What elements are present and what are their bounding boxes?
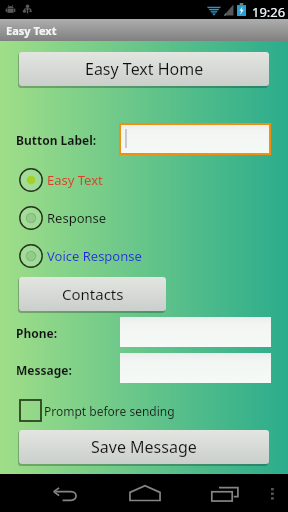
staticText: Contacts bbox=[62, 284, 124, 304]
staticText: Easy Text bbox=[6, 23, 57, 38]
button[interactable]: Easy Text Home bbox=[19, 52, 269, 87]
button[interactable]: Easy Text bbox=[0, 165, 288, 195]
staticText: Button Label: bbox=[16, 132, 97, 148]
button[interactable]: Back bbox=[44, 474, 84, 512]
button[interactable]: Response bbox=[0, 203, 288, 233]
staticText: 19:26 bbox=[252, 3, 286, 21]
button[interactable]: Contacts bbox=[19, 277, 166, 312]
button[interactable]: Home bbox=[125, 474, 165, 512]
button[interactable]: Recent apps bbox=[205, 474, 245, 512]
staticText: Message: bbox=[16, 362, 72, 378]
staticText: Easy Text Home bbox=[85, 58, 204, 80]
staticText: Response bbox=[47, 209, 107, 227]
button[interactable] bbox=[120, 353, 271, 383]
staticText: Prompt before sending bbox=[44, 403, 175, 419]
staticText: Easy Text bbox=[47, 171, 103, 189]
staticText: Phone: bbox=[16, 325, 58, 341]
button[interactable] bbox=[120, 317, 271, 347]
button[interactable] bbox=[119, 123, 271, 155]
button[interactable]: Save Message bbox=[19, 430, 269, 465]
button[interactable]: More options bbox=[262, 474, 284, 512]
staticText: Voice Response bbox=[47, 247, 142, 265]
button[interactable]: Prompt before sending bbox=[20, 400, 175, 421]
staticText: Save Message bbox=[91, 436, 197, 458]
button[interactable]: Voice Response bbox=[0, 241, 288, 271]
